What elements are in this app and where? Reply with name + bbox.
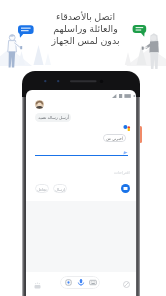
staticText: أرسل رسالة نصية	[38, 115, 69, 121]
button[interactable]: Mute	[123, 281, 130, 288]
button[interactable]: إرسال	[53, 184, 67, 193]
other: Assistant	[123, 125, 131, 133]
staticText: إرسال	[55, 187, 65, 191]
button[interactable]: أخبرني عن	[103, 134, 126, 142]
button[interactable]: Assistant shortcut	[34, 282, 41, 289]
staticText: اقتراحات	[114, 170, 130, 175]
button[interactable]: تجاهل	[35, 184, 49, 193]
button[interactable]: أرسل رسالة نصية	[35, 113, 71, 122]
staticText: تجاهل	[37, 187, 47, 191]
button[interactable]	[60, 276, 100, 289]
staticText: أخبرني عن	[106, 136, 124, 141]
staticText: اتصل بالأصدقاء والعائلة وراسلهم بدون لمس…	[51, 10, 120, 47]
button[interactable]: Send	[121, 184, 130, 193]
